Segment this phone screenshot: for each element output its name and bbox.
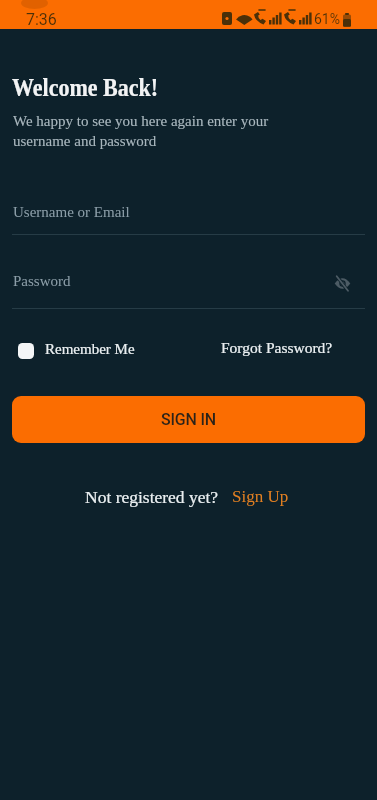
staticText: Not registered yet? [85, 487, 219, 506]
staticText: 61% [314, 11, 340, 27]
staticText: Sign Up [232, 487, 289, 506]
staticText: Remember Me [45, 341, 135, 358]
button[interactable]: Password [12, 265, 365, 309]
staticText: We happy to see you here again enter you… [13, 113, 269, 149]
button[interactable]: Sign Up [228, 483, 292, 509]
button[interactable]: Remember Me [12, 336, 152, 364]
button[interactable]: Forgot Password? [217, 336, 329, 364]
button[interactable]: SIGN IN [12, 396, 365, 443]
button[interactable]: Username or Email [12, 196, 365, 235]
staticText: Username or Email [13, 204, 130, 221]
staticText: SIGN IN [161, 410, 216, 429]
staticText: 7:36 [26, 10, 57, 29]
staticText: Password [13, 273, 71, 290]
staticText: Welcome Back! [12, 73, 159, 101]
staticText: Forgot Password? [221, 339, 333, 356]
